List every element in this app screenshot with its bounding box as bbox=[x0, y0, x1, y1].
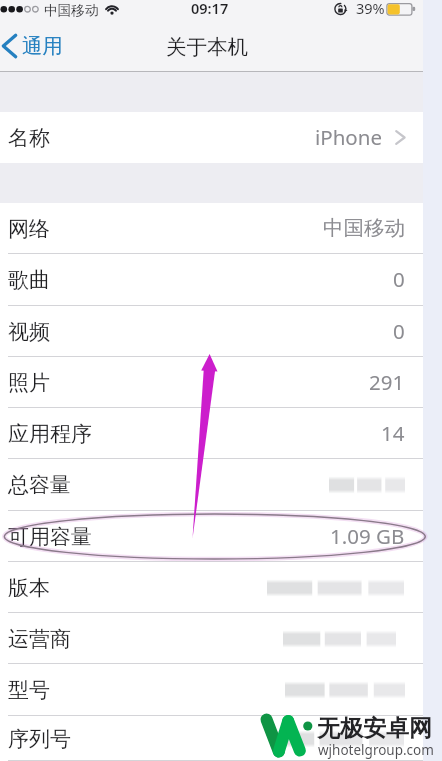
button[interactable]: 照片 bbox=[0, 357, 423, 408]
staticText: 可用容量 bbox=[8, 524, 92, 550]
button[interactable]: 通用 bbox=[0, 30, 67, 62]
staticText: 照片 bbox=[8, 370, 50, 396]
staticText: 视频 bbox=[8, 319, 50, 345]
staticText: 运营商 bbox=[8, 626, 71, 652]
staticText: 通用 bbox=[22, 33, 63, 59]
staticText: 中国移动 bbox=[323, 215, 405, 241]
button[interactable]: 序列号 bbox=[0, 716, 423, 761]
staticText: 序列号 bbox=[8, 726, 71, 752]
staticText: 291 bbox=[369, 368, 405, 396]
staticText: 0 bbox=[393, 265, 405, 293]
staticText: 1.09 GB bbox=[330, 522, 405, 550]
staticText: 名称 bbox=[8, 125, 50, 151]
staticText: 14 bbox=[381, 419, 405, 447]
staticText: 中国移动 bbox=[44, 2, 99, 19]
staticText: 歌曲 bbox=[8, 267, 50, 293]
button[interactable]: 总容量 bbox=[0, 459, 423, 511]
staticText: 网络 bbox=[8, 216, 50, 242]
button[interactable]: 运营商 bbox=[0, 613, 423, 664]
staticText: 应用程序 bbox=[8, 421, 92, 447]
staticText: wjhotelgroup.com bbox=[318, 741, 434, 759]
staticText: 39% bbox=[356, 0, 385, 18]
staticText: iPhone bbox=[315, 123, 382, 151]
other: More bbox=[395, 130, 406, 145]
staticText: 09:17 bbox=[191, 0, 229, 18]
staticText: 总容量 bbox=[8, 472, 71, 498]
staticText: 版本 bbox=[8, 575, 50, 601]
button[interactable]: 名称 bbox=[0, 112, 423, 163]
staticText: 关于本机 bbox=[166, 34, 248, 60]
button[interactable]: 可用容量 bbox=[0, 511, 423, 562]
staticText: 无极安卓网 bbox=[317, 714, 432, 743]
button[interactable]: 网络 bbox=[0, 203, 423, 254]
staticText: 型号 bbox=[8, 677, 50, 703]
button[interactable]: 歌曲 bbox=[0, 254, 423, 306]
button[interactable]: 版本 bbox=[0, 562, 423, 613]
button[interactable]: 应用程序 bbox=[0, 408, 423, 459]
staticText: 0 bbox=[393, 317, 405, 345]
button[interactable]: 型号 bbox=[0, 664, 423, 716]
button[interactable]: 视频 bbox=[0, 306, 423, 357]
